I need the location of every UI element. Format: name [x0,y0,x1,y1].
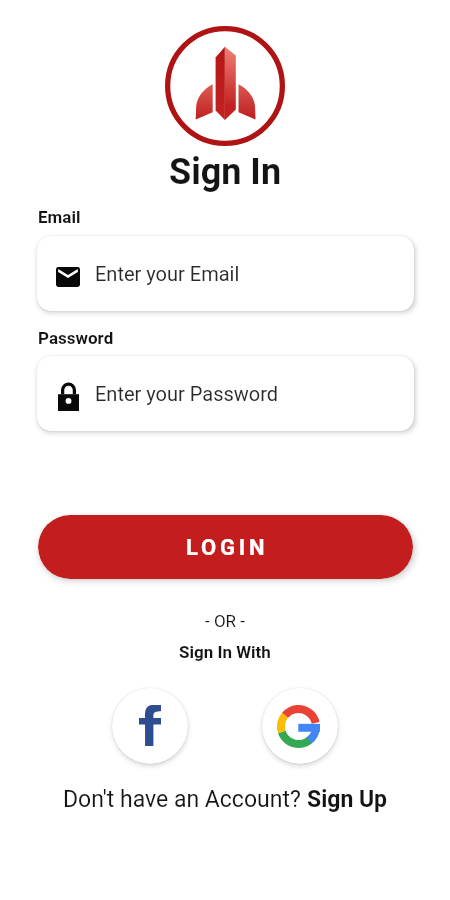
staticText: Sign In With [179,642,271,662]
staticText: Sign Up [307,786,388,813]
button[interactable]: Sign Up [307,786,388,813]
button[interactable]: LOGIN [38,515,413,579]
staticText: Enter your Email [95,262,240,285]
staticText: LOGIN [186,535,269,561]
staticText: Don't have an Account? [63,786,307,813]
staticText: Password [38,328,114,348]
staticText: Sign In [169,151,282,193]
button[interactable]: Sign in with Facebook [112,688,188,764]
staticText: Enter your Password [95,382,279,405]
staticText: - OR - [205,611,246,631]
button[interactable]: Enter your Email [37,236,414,311]
button[interactable]: Sign in with Google [262,688,338,764]
staticText: Email [38,207,81,227]
button[interactable]: Enter your Password [37,356,414,431]
